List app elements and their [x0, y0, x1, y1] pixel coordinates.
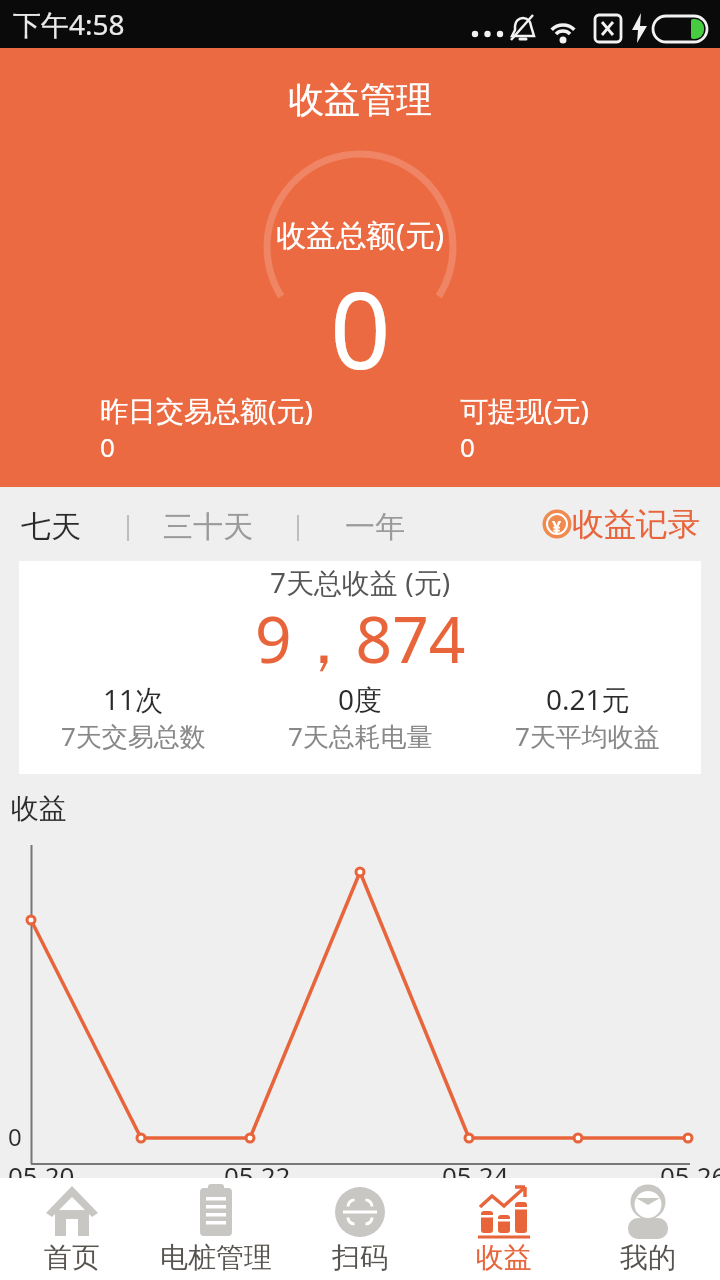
button[interactable]: 三十天	[163, 508, 253, 546]
button[interactable]: 电桩管理	[144, 1178, 288, 1280]
staticText: 0	[330, 256, 391, 400]
staticText: 首页	[44, 1240, 100, 1275]
staticText: 收益	[11, 791, 67, 826]
staticText: 我的	[620, 1240, 676, 1275]
button[interactable]: 我的	[576, 1178, 720, 1280]
staticText: 05.20	[8, 1158, 75, 1193]
staticText: 05.26	[660, 1158, 720, 1193]
staticText: 收益	[476, 1240, 532, 1275]
button[interactable]: 七天	[21, 508, 81, 546]
staticText: 11次	[103, 680, 164, 718]
staticText: 收益管理	[288, 77, 432, 122]
staticText: 0	[100, 429, 115, 464]
staticText: 7天平均收益	[515, 718, 660, 754]
staticText: 7天交易总数	[61, 718, 206, 754]
staticText: 05.22	[224, 1158, 291, 1193]
staticText: 0	[8, 1120, 22, 1153]
staticText: 05.24	[442, 1158, 509, 1193]
button[interactable]: 扫码	[288, 1178, 432, 1280]
button[interactable]: 收益	[432, 1178, 576, 1280]
staticText: 7天总收益 (元)	[270, 563, 451, 601]
staticText: 扫码	[332, 1240, 388, 1275]
staticText: 9，874	[255, 595, 466, 682]
staticText: 0.21元	[546, 680, 630, 718]
staticText: 0	[460, 429, 475, 464]
staticText: ¥	[552, 516, 562, 538]
button[interactable]: 收益记录	[542, 504, 700, 544]
staticText: 收益记录	[572, 504, 700, 544]
staticText: 0度	[338, 680, 383, 718]
button[interactable]: 首页	[0, 1178, 144, 1280]
staticText: 电桩管理	[160, 1240, 272, 1275]
staticText: 昨日交易总额(元)	[100, 391, 313, 429]
staticText: 可提现(元)	[460, 391, 589, 429]
staticText: 收益总额(元)	[276, 214, 444, 255]
staticText: 下午4:58	[13, 5, 125, 43]
staticText: 7天总耗电量	[288, 718, 433, 754]
button[interactable]: 一年	[345, 508, 405, 546]
